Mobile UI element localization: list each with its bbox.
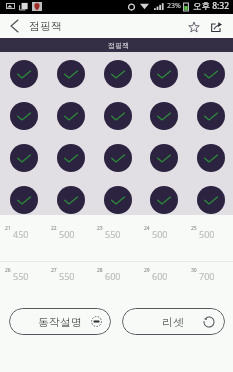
button[interactable]: Set complete [10, 186, 38, 214]
button[interactable]: Favorite [183, 16, 205, 38]
staticText: 동작설명 [38, 315, 82, 329]
button[interactable]: Set complete [57, 144, 85, 172]
button[interactable]: 29 [139, 267, 186, 289]
button[interactable]: Set complete [104, 186, 132, 214]
button[interactable]: Set complete [197, 102, 225, 130]
button[interactable]: Share [205, 16, 227, 38]
staticText: 점핑잭 [29, 19, 62, 33]
staticText: 550 [59, 270, 75, 282]
staticText: 25 [191, 225, 197, 232]
staticText: 28 [97, 267, 103, 274]
button[interactable]: 23 [92, 225, 139, 247]
staticText: 500 [152, 228, 168, 240]
button[interactable]: Set complete [150, 144, 178, 172]
staticText: 550 [105, 228, 121, 240]
staticText: 700 [199, 270, 215, 282]
button[interactable]: Set complete [104, 60, 132, 88]
button[interactable]: 26 [0, 267, 46, 289]
staticText: 리셋 [162, 315, 184, 329]
button[interactable]: Set complete [104, 102, 132, 130]
button[interactable]: 21 [0, 225, 46, 247]
staticText: 27 [51, 267, 57, 274]
button[interactable]: Set complete [150, 60, 178, 88]
staticText: 22 [51, 225, 57, 232]
button[interactable]: Back [2, 14, 26, 38]
staticText: 600 [152, 270, 168, 282]
staticText: 550 [13, 270, 29, 282]
button[interactable]: 동작설명 [9, 308, 111, 335]
staticText: 26 [5, 267, 11, 274]
staticText: 23 [97, 225, 103, 232]
staticText: 500 [59, 228, 75, 240]
button[interactable]: 30 [186, 267, 233, 289]
button[interactable]: 리셋 [122, 308, 225, 335]
button[interactable]: 22 [46, 225, 92, 247]
staticText: 점핑잭 [108, 41, 129, 50]
button[interactable]: Set complete [104, 144, 132, 172]
button[interactable]: Set complete [10, 102, 38, 130]
staticText: 600 [105, 270, 121, 282]
button[interactable]: Set complete [197, 144, 225, 172]
button[interactable]: Set complete [57, 102, 85, 130]
button[interactable]: 28 [92, 267, 139, 289]
button[interactable]: 25 [186, 225, 233, 247]
staticText: 29 [144, 267, 150, 274]
button[interactable]: Set complete [150, 186, 178, 214]
staticText: 24 [144, 225, 150, 232]
staticText: 30 [191, 267, 197, 274]
button[interactable]: Set complete [197, 186, 225, 214]
button[interactable]: Set complete [10, 144, 38, 172]
button[interactable]: Set complete [197, 60, 225, 88]
button[interactable]: Set complete [57, 186, 85, 214]
button[interactable]: 27 [46, 267, 92, 289]
staticText: 오후 8:32 [193, 0, 230, 12]
staticText: 500 [199, 228, 215, 240]
button[interactable]: Set complete [10, 60, 38, 88]
staticText: 23% [167, 1, 181, 11]
button[interactable]: Set complete [150, 102, 178, 130]
staticText: 21 [5, 225, 11, 232]
button[interactable]: Set complete [57, 60, 85, 88]
button[interactable]: 24 [139, 225, 186, 247]
staticText: 450 [13, 228, 29, 240]
